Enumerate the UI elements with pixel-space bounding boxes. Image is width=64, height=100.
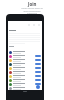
button[interactable] xyxy=(8,58,42,62)
button[interactable] xyxy=(35,63,41,65)
button[interactable] xyxy=(35,71,41,73)
button[interactable] xyxy=(8,54,42,58)
button[interactable] xyxy=(35,55,41,57)
button[interactable] xyxy=(8,74,42,78)
button[interactable] xyxy=(35,59,41,61)
button[interactable] xyxy=(35,83,41,85)
staticText: Join xyxy=(28,1,37,7)
button[interactable] xyxy=(35,75,41,77)
button[interactable] xyxy=(35,79,41,81)
button[interactable] xyxy=(35,67,41,69)
button[interactable] xyxy=(8,66,42,70)
button[interactable] xyxy=(8,70,42,74)
button[interactable] xyxy=(8,82,42,86)
button[interactable] xyxy=(8,50,42,54)
button[interactable] xyxy=(8,86,42,90)
button[interactable]: Add xyxy=(36,85,40,89)
button[interactable] xyxy=(8,62,42,66)
staticText: Lorem ipsum dolor sit amet consectetur a… xyxy=(21,7,43,14)
button[interactable] xyxy=(8,78,42,82)
